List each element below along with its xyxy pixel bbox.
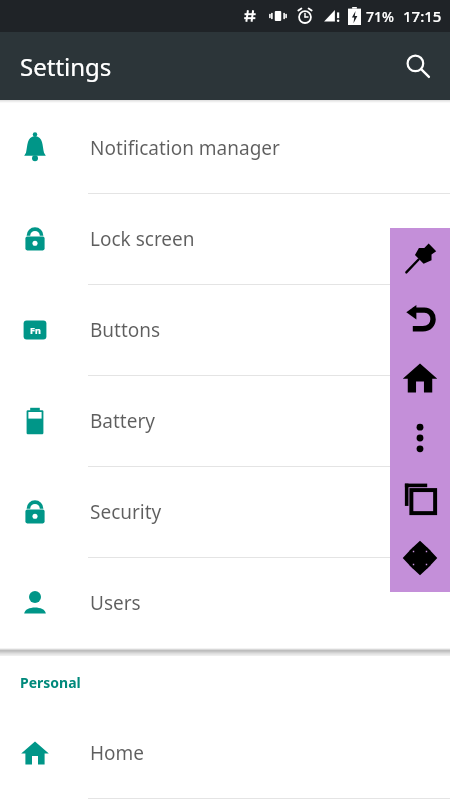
button[interactable]: Security — [0, 467, 450, 558]
staticText: Lock screen — [90, 226, 195, 252]
staticText: 17:15 — [403, 6, 442, 26]
staticText: Fn — [30, 324, 41, 336]
button[interactable]: Move — [390, 528, 450, 588]
staticText: Settings — [20, 50, 112, 83]
button[interactable]: Home — [0, 708, 450, 799]
button[interactable]: Users — [0, 558, 450, 648]
staticText: Battery — [90, 408, 155, 434]
button[interactable]: Recents — [390, 468, 450, 528]
staticText: Security — [90, 499, 162, 525]
staticText: Personal — [20, 673, 81, 692]
button[interactable]: Search — [394, 42, 442, 90]
button[interactable]: Notification manager — [0, 103, 450, 194]
staticText: Users — [90, 590, 141, 616]
staticText: Home — [90, 740, 145, 766]
staticText: Buttons — [90, 317, 161, 343]
button[interactable]: Pin — [390, 228, 450, 288]
staticText: 71% — [366, 7, 394, 26]
button[interactable]: Fn — [0, 285, 450, 376]
button[interactable]: Battery — [0, 376, 450, 467]
button[interactable]: Lock screen — [0, 194, 450, 285]
button[interactable]: More options — [390, 408, 450, 468]
button[interactable]: Back — [390, 288, 450, 348]
button[interactable]: Home — [390, 348, 450, 408]
staticText: Notification manager — [90, 135, 280, 161]
